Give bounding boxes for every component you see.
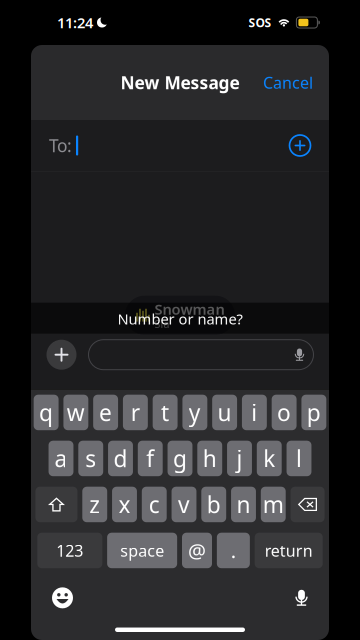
staticText: f	[146, 443, 154, 473]
staticText: SOS	[248, 14, 271, 30]
staticText: p	[307, 397, 321, 427]
button[interactable]: p	[301, 395, 326, 430]
staticText: @	[188, 537, 206, 564]
staticText: b	[207, 489, 221, 519]
staticText: return	[265, 540, 313, 561]
button[interactable]: Delete	[290, 487, 324, 522]
button[interactable]: o	[272, 395, 297, 430]
button[interactable]: s	[78, 441, 103, 476]
button[interactable]: k	[257, 441, 282, 476]
staticText: x	[118, 489, 130, 519]
staticText: c	[149, 489, 160, 519]
staticText: Snowman	[154, 299, 224, 319]
staticText: h	[203, 443, 217, 473]
staticText: k	[263, 443, 275, 473]
staticText: t	[161, 397, 169, 427]
button[interactable]: j	[227, 441, 252, 476]
staticText: New Message	[120, 71, 239, 94]
staticText: d	[113, 443, 127, 473]
button[interactable]: i	[242, 395, 267, 430]
button[interactable]: n	[231, 487, 256, 522]
staticText: 123	[56, 540, 83, 561]
staticText: g	[173, 443, 187, 473]
button[interactable]: t	[153, 395, 178, 430]
button[interactable]: return	[255, 533, 323, 568]
button[interactable]: @	[182, 533, 212, 568]
button[interactable]: m	[261, 487, 286, 522]
staticText: space	[120, 540, 164, 561]
staticText: 11:24	[57, 13, 93, 32]
button[interactable]: z	[82, 487, 107, 522]
button[interactable]: r	[123, 395, 148, 430]
staticText: q	[39, 397, 53, 427]
staticText: To:	[49, 134, 72, 157]
staticText: Sia	[154, 317, 169, 331]
staticText: n	[236, 489, 250, 519]
staticText: r	[131, 397, 140, 427]
button[interactable]: e	[93, 395, 118, 430]
button[interactable]: v	[171, 487, 196, 522]
button[interactable]: f	[138, 441, 163, 476]
button[interactable]: To:	[31, 120, 329, 171]
staticText: u	[218, 397, 232, 427]
staticText: s	[85, 443, 96, 473]
button[interactable]: space	[107, 533, 177, 568]
button[interactable]	[88, 340, 313, 370]
button[interactable]: g	[167, 441, 192, 476]
button[interactable]: q	[34, 395, 59, 430]
staticText: e	[99, 397, 112, 427]
button[interactable]: Emoji	[52, 587, 73, 608]
button[interactable]: Cancel	[255, 66, 321, 99]
staticText: o	[277, 397, 291, 427]
staticText: l	[296, 443, 302, 473]
staticText: a	[54, 443, 67, 473]
button[interactable]: l	[286, 441, 311, 476]
button[interactable]: .	[217, 533, 250, 568]
button[interactable]: x	[112, 487, 137, 522]
staticText: w	[67, 397, 85, 427]
staticText: m	[263, 489, 284, 519]
staticText: y	[189, 397, 201, 427]
button[interactable]: h	[197, 441, 222, 476]
staticText: z	[89, 489, 100, 519]
staticText: v	[178, 489, 190, 519]
staticText: i	[251, 397, 257, 427]
button[interactable]: u	[212, 395, 237, 430]
button[interactable]: 123	[37, 533, 102, 568]
staticText: j	[236, 443, 242, 473]
staticText: Cancel	[263, 72, 313, 93]
button[interactable]: a	[48, 441, 73, 476]
button[interactable]: b	[201, 487, 226, 522]
staticText: Number or name?	[117, 309, 242, 328]
button[interactable]: d	[108, 441, 133, 476]
button[interactable]: Shift	[35, 487, 77, 522]
button[interactable]: Add attachment	[46, 340, 76, 370]
button[interactable]: w	[63, 395, 88, 430]
button[interactable]: y	[182, 395, 207, 430]
staticText: .	[231, 537, 236, 564]
button[interactable]: c	[142, 487, 167, 522]
button[interactable]: Dictate	[295, 588, 308, 608]
